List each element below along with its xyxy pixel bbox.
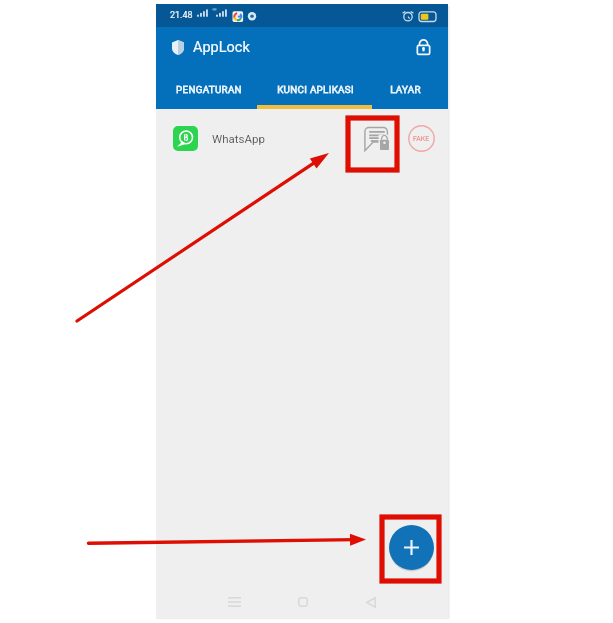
button[interactable]: WhatsApp: [156, 109, 448, 167]
button[interactable]: Lock: [406, 30, 440, 64]
staticText: 21.48: [170, 10, 193, 21]
staticText: WhatsApp: [212, 132, 265, 145]
button[interactable]: Back: [358, 589, 384, 615]
staticText: KUNCI APLIKASI: [277, 84, 354, 95]
button[interactable]: KUNCI APLIKASI: [257, 67, 372, 109]
button[interactable]: LAYAR: [372, 67, 448, 109]
button[interactable]: Add: [389, 525, 434, 570]
button[interactable]: Lock messages: [361, 122, 393, 154]
staticText: AppLock: [193, 39, 250, 56]
button[interactable]: PENGATURAN: [156, 67, 257, 109]
button[interactable]: Fake cover: [408, 125, 435, 152]
button[interactable]: Home: [290, 589, 316, 615]
button[interactable]: Recents: [221, 589, 247, 615]
staticText: PENGATURAN: [176, 84, 242, 95]
staticText: FAKE: [413, 135, 430, 143]
staticText: LAYAR: [390, 84, 421, 95]
